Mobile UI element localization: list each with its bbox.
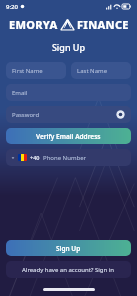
staticText: Sign Up [0, 41, 137, 53]
staticText: Phone Number [43, 154, 87, 162]
staticText: Email [12, 89, 28, 97]
staticText: Password [12, 111, 40, 119]
staticText: Sign Up [56, 244, 81, 253]
button[interactable]: Email [6, 84, 131, 101]
staticText: EMORYA [9, 17, 58, 32]
button[interactable]: Already have an account? Sign in [6, 261, 131, 278]
staticText: First Name [12, 67, 43, 75]
staticText: Already have an account? Sign in [22, 266, 115, 274]
staticText: FINANCE [77, 17, 129, 32]
button[interactable]: Sign Up [6, 240, 131, 256]
button[interactable]: Show password [116, 110, 125, 119]
button[interactable]: First Name [6, 62, 66, 79]
staticText: Last Name [77, 67, 108, 75]
button[interactable]: Select country [6, 149, 131, 166]
other: Select country [11, 156, 15, 160]
staticText: Verify Email Address [36, 132, 101, 141]
button[interactable]: Verify Email Address [6, 128, 131, 144]
staticText: +40 [30, 154, 40, 161]
button[interactable]: Password [6, 106, 131, 123]
staticText: 9:20 [6, 3, 18, 11]
button[interactable]: Last Name [71, 62, 131, 79]
